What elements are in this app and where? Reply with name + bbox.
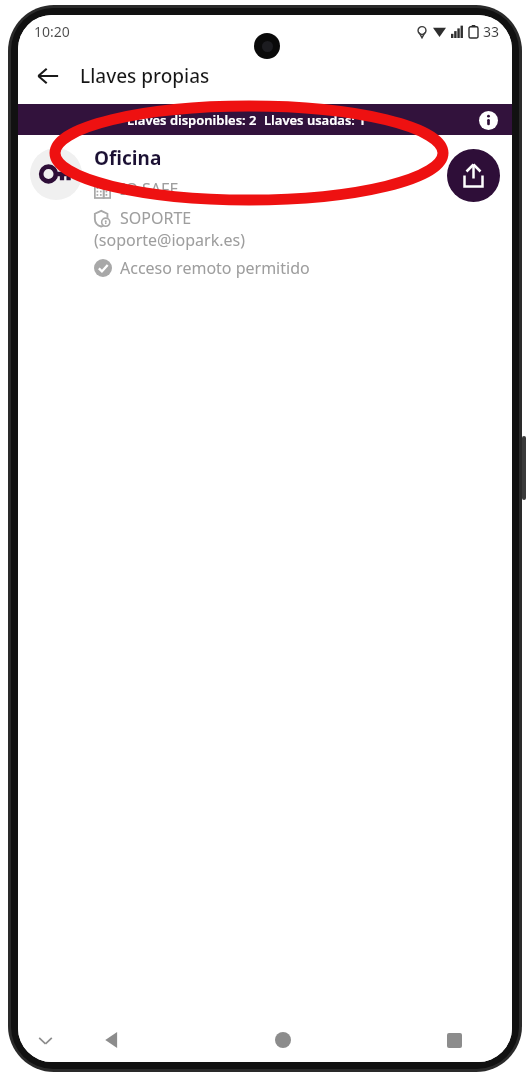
staticText: Llaves propias (80, 63, 210, 89)
button[interactable]: Home (261, 1018, 305, 1062)
button[interactable]: Hide (28, 1023, 62, 1057)
staticText: 10:20 (34, 22, 70, 41)
button[interactable]: Share (447, 149, 500, 202)
staticText: SOPORTE (120, 207, 192, 229)
staticText: IO SAFE (120, 178, 179, 200)
button[interactable]: Recent apps (432, 1018, 476, 1062)
button[interactable]: Back (90, 1018, 134, 1062)
staticText: Llaves disponibles: 2 (127, 111, 257, 129)
staticText: Llaves usadas: 1 (264, 111, 366, 129)
button[interactable]: Information (475, 107, 501, 133)
button[interactable]: Oficina (18, 135, 512, 291)
staticText: (soporte@iopark.es) (94, 229, 246, 251)
button[interactable]: Back (24, 52, 72, 100)
staticText: Acceso remoto permitido (120, 257, 310, 279)
staticText: 33 (483, 22, 500, 41)
staticText: Oficina (94, 145, 162, 171)
button[interactable]: Llaves disponibles: 2 (18, 104, 512, 135)
